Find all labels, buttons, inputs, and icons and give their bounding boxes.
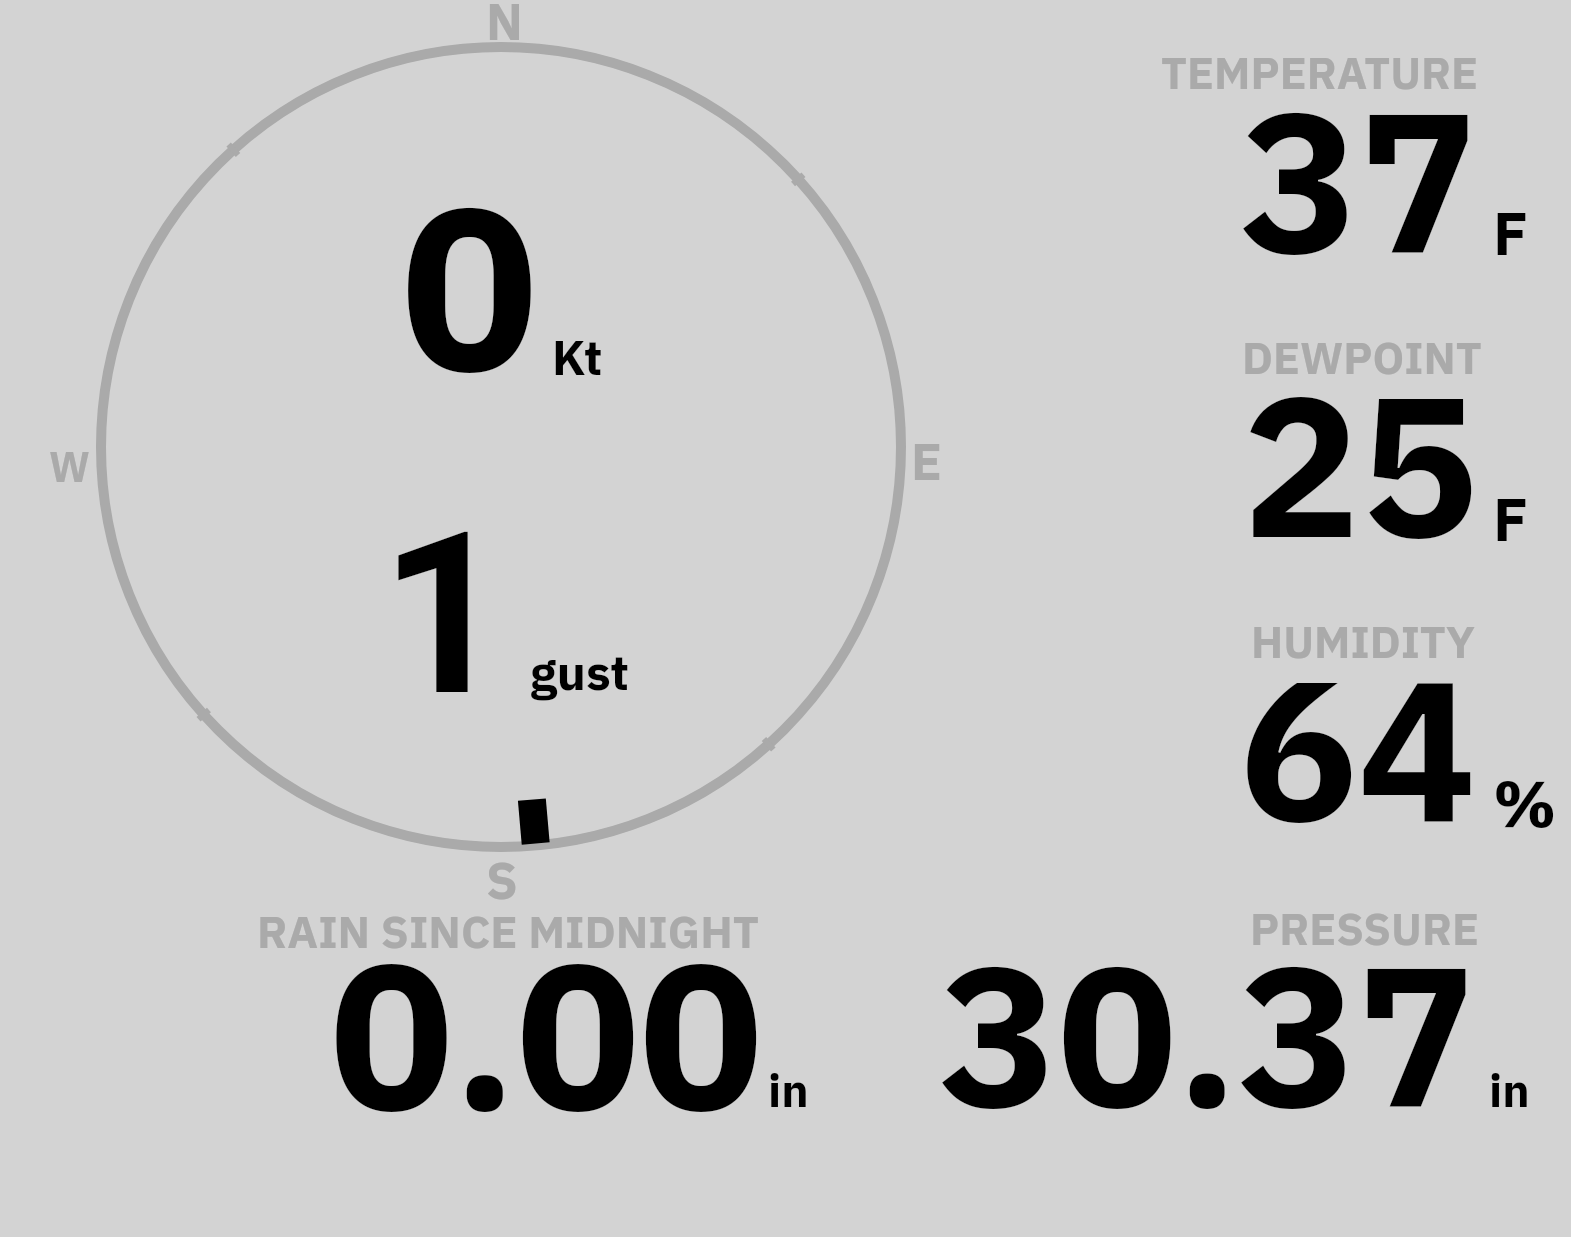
button[interactable]: Rain since midnight 0.00 inches [250,905,825,1120]
staticText: S [486,847,518,913]
button[interactable]: Humidity 64 percent [1155,615,1565,835]
staticText: Kt [552,326,603,388]
staticText: PRESSURE [1250,899,1479,957]
button[interactable]: Pressure 30.37 inches [930,905,1540,1120]
staticText: 0.00 [330,900,763,1167]
staticText: 0 [401,136,538,432]
button[interactable]: Temperature 37 Fahrenheit [1155,40,1555,265]
staticText: W [49,439,90,494]
button[interactable]: Dewpoint 25 Fahrenheit [1155,330,1555,550]
staticText: in [768,1060,809,1120]
staticText: HUMIDITY [1251,612,1475,670]
button[interactable]: Wind speed 0 knots [380,150,620,390]
button[interactable]: Wind direction compass [81,27,921,867]
staticText: in [1489,1060,1530,1120]
staticText: DEWPOINT [1242,328,1482,386]
staticText: 64 [1239,618,1477,875]
button[interactable]: Gust 1 knot [375,470,645,710]
staticText: TEMPERATURE [1161,43,1479,101]
staticText: RAIN SINCE MIDNIGHT [257,902,760,961]
staticText: 30.37 [939,904,1476,1161]
staticText: 25 [1242,335,1479,591]
staticText: F [1493,193,1529,271]
staticText: 1 [380,484,509,747]
staticText: E [911,428,942,494]
staticText: F [1493,479,1529,557]
staticText: 37 [1240,50,1478,307]
staticText: % [1493,760,1557,845]
staticText: N [486,0,523,54]
staticText: gust [530,640,630,704]
